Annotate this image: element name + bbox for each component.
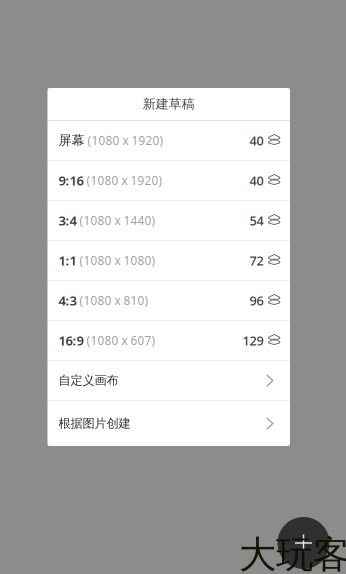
staticText: 大玩客	[239, 532, 346, 574]
staticText: 自定义画布	[58, 373, 118, 388]
staticText: 新建草稿	[143, 96, 195, 112]
button[interactable]: 屏幕	[47, 121, 290, 160]
staticText: 40	[249, 172, 263, 189]
button[interactable]: 根据图片创建	[47, 401, 290, 446]
staticText: (1080 x 1440)	[76, 212, 155, 228]
button[interactable]: 4:3	[47, 281, 290, 320]
staticText: 屏幕	[58, 132, 84, 149]
staticText: (1080 x 1920)	[83, 172, 162, 188]
staticText: 16:9	[58, 332, 83, 349]
staticText: (1080 x 1920)	[84, 132, 163, 148]
button[interactable]: 9:16	[47, 161, 290, 200]
staticText: 129	[242, 332, 263, 349]
button[interactable]: 3:4	[47, 201, 290, 240]
button[interactable]: New draft	[277, 517, 329, 569]
staticText: (1080 x 607)	[83, 332, 155, 348]
staticText: 54	[249, 212, 263, 229]
staticText: 1:1	[58, 252, 76, 269]
staticText: (1080 x 1080)	[76, 252, 155, 268]
staticText: 96	[249, 292, 263, 309]
staticText: 根据图片创建	[58, 416, 130, 431]
staticText: 72	[249, 252, 263, 269]
staticText: (1080 x 810)	[76, 292, 148, 308]
button[interactable]: 1:1	[47, 241, 290, 280]
staticText: 3:4	[58, 212, 76, 229]
staticText: 4:3	[58, 292, 76, 309]
button[interactable]: 16:9	[47, 321, 290, 360]
staticText: 40	[249, 132, 263, 149]
staticText: 9:16	[58, 172, 83, 189]
button[interactable]: 自定义画布	[47, 361, 290, 400]
